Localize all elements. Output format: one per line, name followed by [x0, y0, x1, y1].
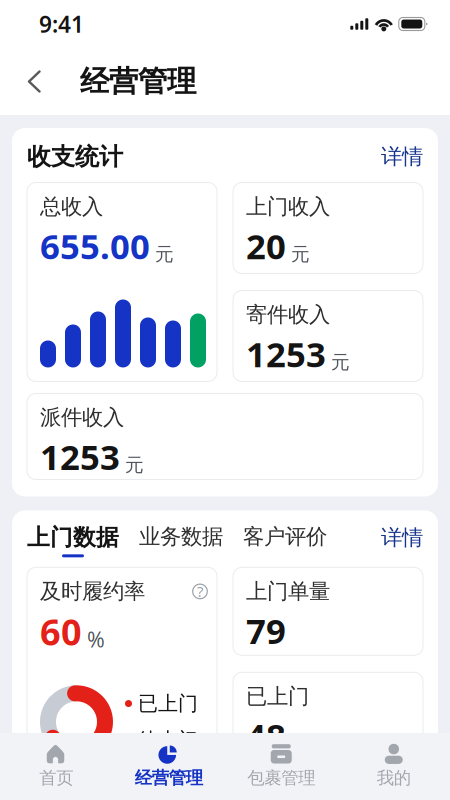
staticText: 首页 — [39, 767, 73, 789]
staticText: 包裹管理 — [247, 767, 315, 789]
staticText: 20 — [246, 223, 286, 269]
staticText: 元 — [331, 351, 350, 374]
staticText: 寄件收入 — [246, 301, 330, 328]
staticText: 1253 — [40, 434, 120, 480]
staticText: 经营管理 — [135, 767, 203, 789]
staticText: 655.00 — [40, 223, 150, 269]
button[interactable]: 说明 — [192, 583, 208, 599]
button[interactable]: 首页 — [0, 735, 112, 798]
staticText: 上门单量 — [246, 578, 330, 604]
staticText: 收支统计 — [27, 142, 123, 171]
staticText: 79 — [246, 607, 286, 653]
button[interactable]: 详情 — [381, 523, 423, 551]
staticText: 客户评价 — [243, 523, 327, 550]
staticText: 待上门 — [138, 728, 198, 752]
button[interactable]: 详情 — [381, 144, 423, 170]
staticText: 48 — [246, 712, 286, 758]
staticText: 元 — [291, 243, 310, 266]
staticText: 详情 — [381, 524, 423, 551]
staticText: 已上门 — [246, 683, 309, 709]
staticText: 60 — [40, 607, 82, 655]
button[interactable]: 上门数据 — [27, 523, 119, 557]
staticText: % — [87, 625, 105, 653]
staticText: 已上门 — [138, 691, 198, 716]
staticText: 9:41 — [39, 9, 84, 39]
staticText: 详情 — [381, 144, 423, 170]
button[interactable]: 业务数据 — [139, 523, 223, 556]
staticText: 上门收入 — [246, 193, 330, 220]
staticText: 我的 — [377, 767, 411, 789]
staticText: 总收入 — [40, 193, 103, 220]
button[interactable]: 经营管理 — [112, 735, 225, 798]
button[interactable]: 包裹管理 — [225, 735, 337, 798]
staticText: 及时履约率 — [40, 578, 145, 604]
staticText: 1253 — [246, 331, 326, 377]
staticText: ? — [197, 582, 203, 601]
staticText: 元 — [155, 243, 174, 266]
staticText: 经营管理 — [80, 63, 196, 99]
button[interactable]: 返回 — [14, 59, 55, 103]
staticText: 元 — [125, 454, 144, 477]
staticText: 业务数据 — [139, 523, 223, 550]
staticText: 上门数据 — [27, 523, 119, 551]
button[interactable]: 客户评价 — [243, 523, 327, 556]
staticText: 派件收入 — [40, 404, 124, 431]
button[interactable]: 我的 — [337, 735, 450, 798]
